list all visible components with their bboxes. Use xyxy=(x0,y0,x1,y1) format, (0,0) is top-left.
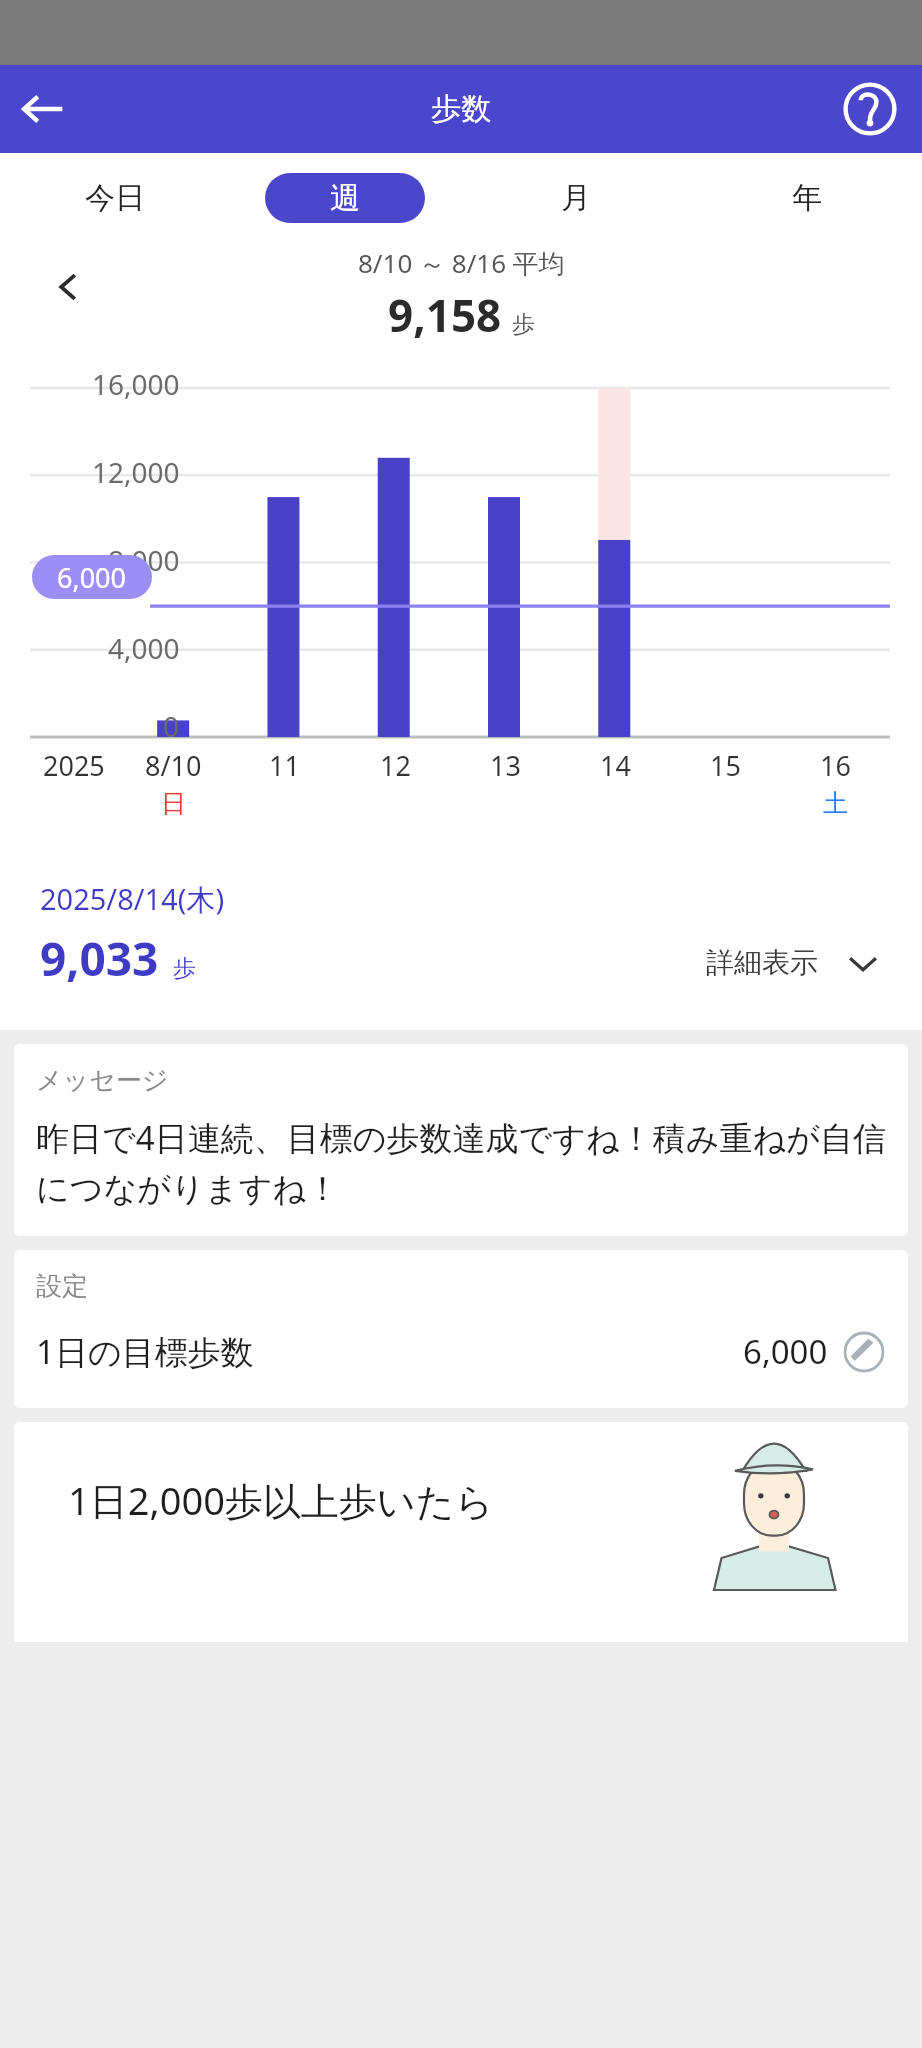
staticText: 歩 xyxy=(173,954,196,983)
staticText: 4,000 xyxy=(108,629,180,667)
staticText: 2025 xyxy=(43,747,105,784)
staticText: メッセージ xyxy=(36,1064,169,1097)
staticText: 11 xyxy=(269,747,300,784)
staticText: 12,000 xyxy=(92,453,180,491)
staticText: 昨日で4日連続、目標の歩数達成ですね！積み重ねが自信につながりますね！ xyxy=(36,1115,892,1210)
staticText: 年 xyxy=(792,179,822,217)
staticText: 2025/8/14(木) xyxy=(40,879,225,919)
staticText: 13 xyxy=(490,747,521,784)
button[interactable]: 1日2,000歩以上歩いたら xyxy=(14,1422,908,1642)
staticText: 0 xyxy=(163,707,180,745)
staticText: 土 xyxy=(823,788,848,819)
button[interactable]: 今日 xyxy=(35,173,195,223)
staticText: 6,000 xyxy=(57,559,127,596)
button[interactable]: 詳細表示 xyxy=(698,935,888,990)
staticText: 週 xyxy=(330,179,360,217)
staticText: 1日2,000歩以上歩いたら xyxy=(68,1474,494,1526)
staticText: 歩数 xyxy=(431,90,491,128)
staticText: 16,000 xyxy=(92,365,180,403)
staticText: 歩 xyxy=(512,310,535,339)
button[interactable]: メッセージ xyxy=(14,1044,908,1236)
staticText: 詳細表示 xyxy=(706,945,818,980)
button[interactable]: Help xyxy=(836,75,904,143)
button[interactable]: 年 xyxy=(727,173,887,223)
button[interactable]: 週 xyxy=(265,173,425,223)
staticText: 15 xyxy=(710,747,741,784)
button[interactable]: Back xyxy=(6,72,80,146)
staticText: 12 xyxy=(380,747,411,784)
staticText: 8/10 xyxy=(145,747,202,784)
staticText: 8/10 ～ 8/16 平均 xyxy=(358,245,565,281)
button[interactable]: Previous week xyxy=(38,257,98,317)
button[interactable]: Edit goal steps xyxy=(842,1330,886,1374)
staticText: 8,000 xyxy=(108,541,180,579)
staticText: 9,158 xyxy=(388,285,502,345)
staticText: 今日 xyxy=(85,179,145,217)
staticText: 16 xyxy=(820,747,851,784)
staticText: 日 xyxy=(161,788,186,819)
staticText: 設定 xyxy=(36,1270,88,1303)
staticText: 9,033 xyxy=(40,927,159,990)
button[interactable]: 1日の目標歩数 xyxy=(36,1329,886,1374)
staticText: 6,000 xyxy=(743,1329,828,1374)
staticText: 月 xyxy=(561,179,591,217)
staticText: 14 xyxy=(600,747,631,784)
staticText: 1日の目標歩数 xyxy=(36,1329,254,1374)
button[interactable]: 月 xyxy=(496,173,656,223)
